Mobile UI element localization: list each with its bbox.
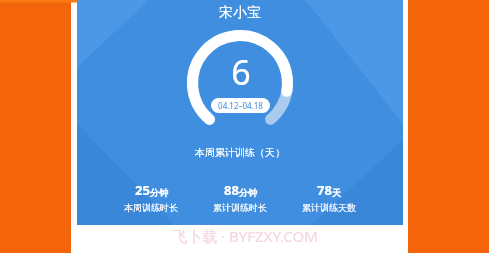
button[interactable]: 宋小宝 bbox=[219, 4, 261, 22]
button[interactable]: 25 bbox=[124, 181, 178, 213]
staticText: 04.12–04.18 bbox=[218, 100, 263, 111]
button[interactable]: 88 bbox=[213, 181, 267, 213]
button[interactable]: 04.12–04.18 bbox=[211, 98, 270, 113]
staticText: 飞卜载 · BYFZXY.COM bbox=[172, 226, 318, 246]
staticText: 88 bbox=[224, 181, 239, 199]
staticText: 本周训练时长 bbox=[124, 202, 178, 213]
staticText: 宋小宝 bbox=[219, 4, 261, 22]
staticText: 6 bbox=[231, 49, 251, 95]
staticText: 分钟 bbox=[239, 187, 257, 198]
staticText: 78 bbox=[317, 181, 332, 199]
staticText: 本周累计训练（天） bbox=[195, 146, 285, 159]
button[interactable]: 78 bbox=[302, 181, 356, 213]
staticText: 天 bbox=[332, 187, 341, 198]
staticText: 分钟 bbox=[150, 187, 168, 198]
staticText: 25 bbox=[135, 181, 150, 199]
staticText: 累计训练天数 bbox=[302, 202, 356, 213]
staticText: 累计训练时长 bbox=[213, 202, 267, 213]
button[interactable]: Weekly training days gauge bbox=[186, 29, 294, 137]
